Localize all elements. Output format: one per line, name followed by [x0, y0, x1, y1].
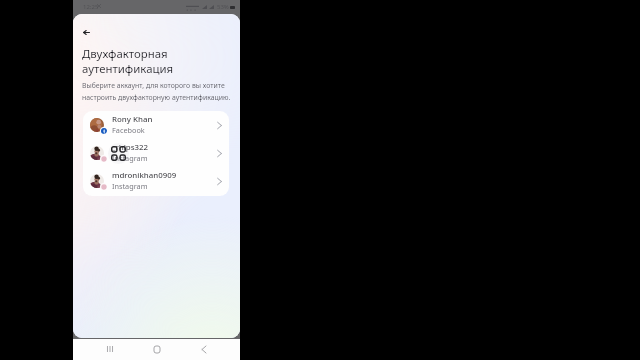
- staticText: _rhlps322: [112, 142, 149, 153]
- staticText: Двухфакторная аутентификация: [82, 46, 174, 76]
- button[interactable]: Home: [150, 342, 164, 356]
- button[interactable]: Rony Khan: [83, 111, 229, 139]
- button[interactable]: mdronikhan0909: [83, 167, 229, 195]
- staticText: Instagram: [112, 153, 148, 163]
- button[interactable]: Back: [197, 342, 211, 356]
- button[interactable]: Recent apps: [103, 342, 117, 356]
- staticText: mdronikhan0909: [112, 170, 177, 181]
- staticText: Rony Khan: [112, 114, 153, 125]
- staticText: Instagram: [112, 181, 148, 191]
- button[interactable]: _rhlps322: [83, 139, 229, 167]
- staticText: Facebook: [112, 125, 145, 135]
- button[interactable]: Back: [77, 23, 95, 41]
- staticText: 53%: [217, 3, 229, 11]
- staticText: Выберите аккаунт, для которого вы хотите…: [82, 81, 231, 102]
- staticText: 12:25: [83, 3, 99, 11]
